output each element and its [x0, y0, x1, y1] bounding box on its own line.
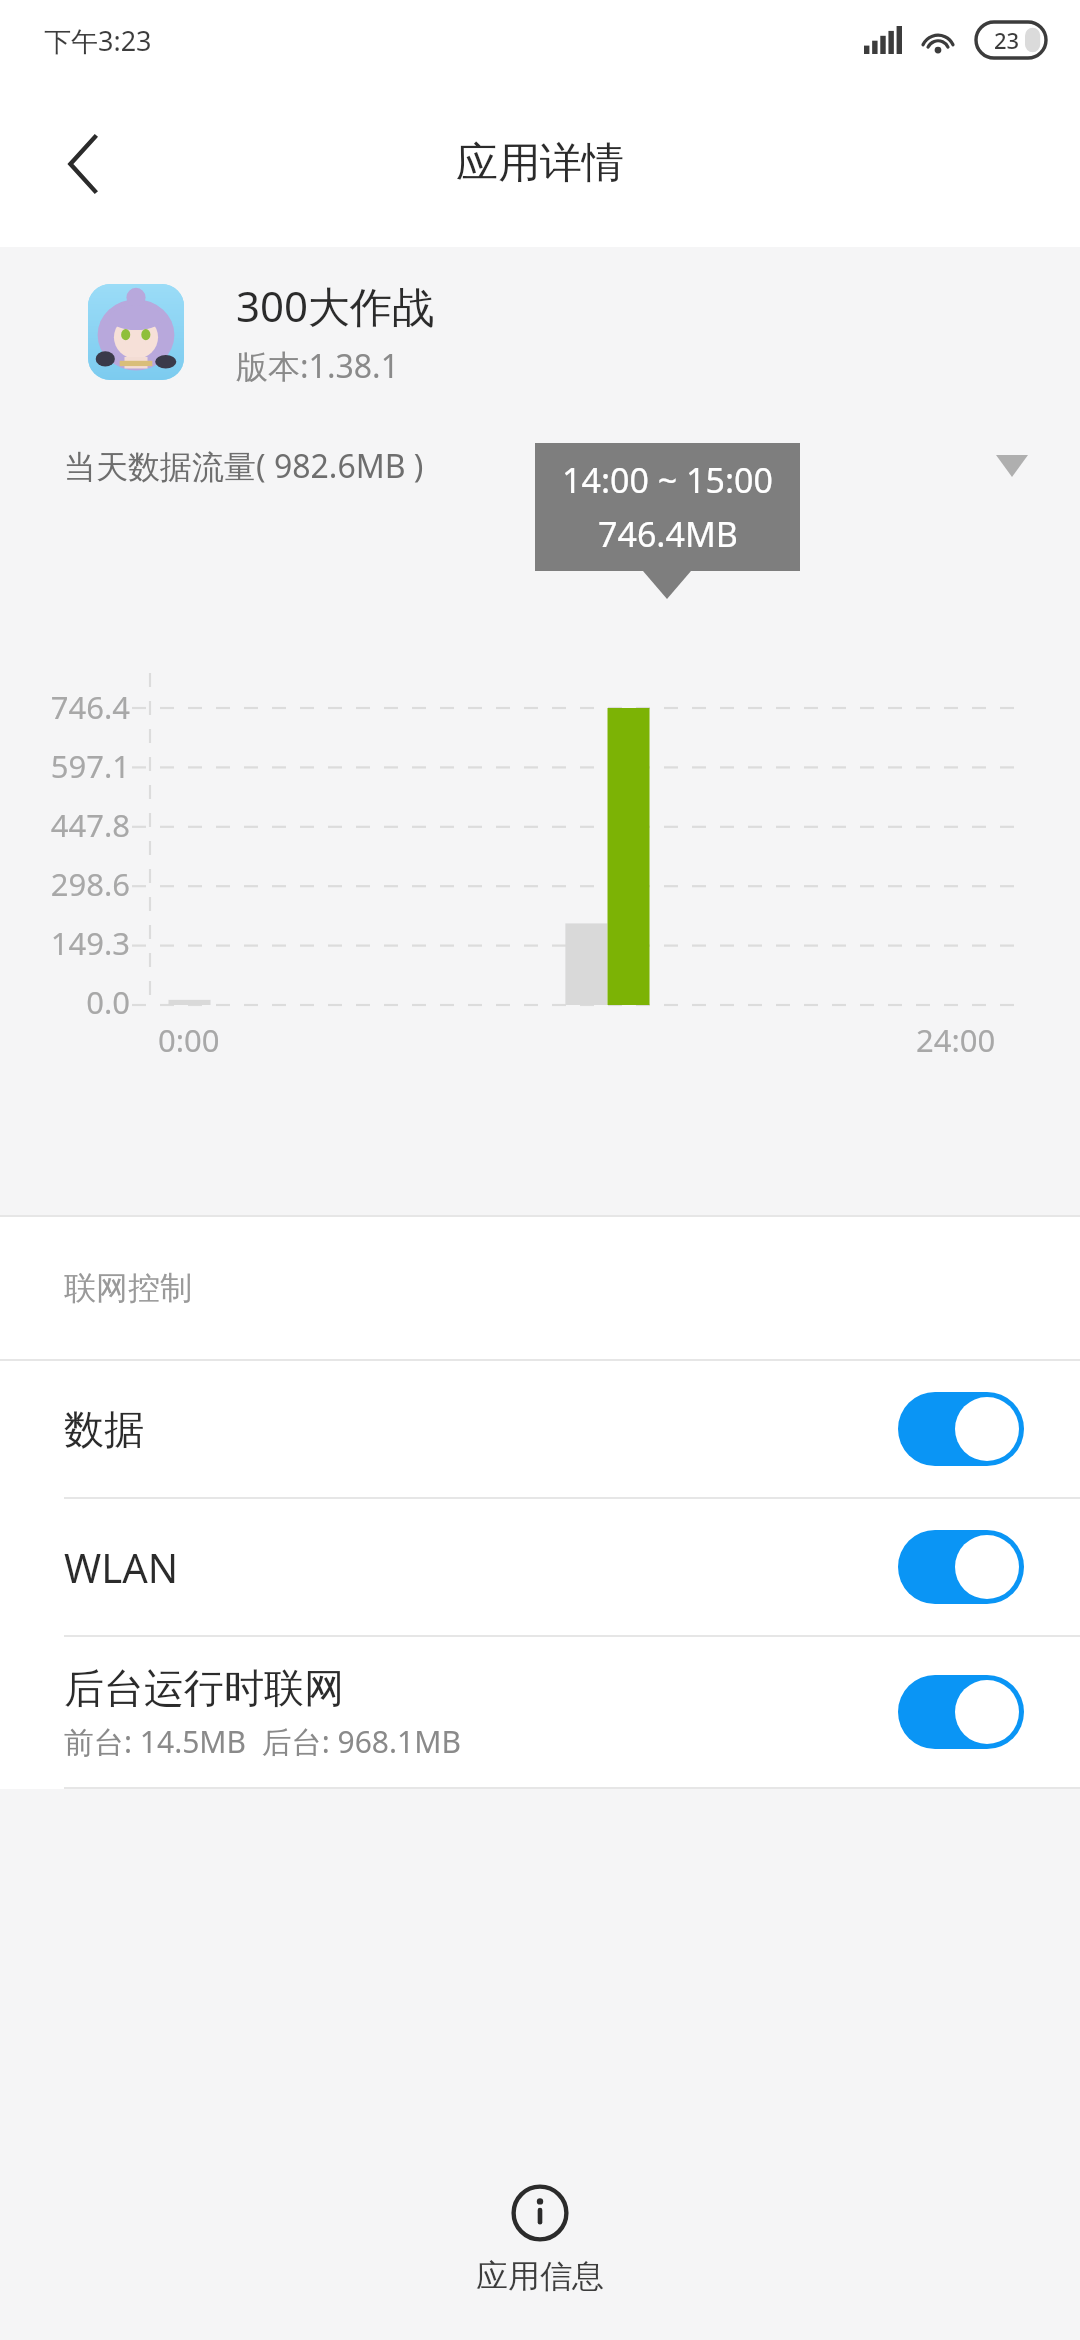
button[interactable]: WLAN	[0, 1499, 1080, 1635]
staticText: 447.8	[50, 804, 130, 846]
button[interactable]: 应用信息	[436, 2178, 644, 2302]
staticText: 当天数据流量( 982.6MB )	[64, 444, 424, 488]
staticText: 后台运行时联网	[64, 1663, 344, 1713]
button[interactable]: Back	[36, 116, 132, 212]
button[interactable]: Toggle on	[898, 1392, 1024, 1466]
button[interactable]: 当天数据流量( 982.6MB )	[0, 417, 1080, 515]
staticText: 版本:1.38.1	[236, 344, 399, 388]
button[interactable]: 300大作战	[0, 247, 1080, 417]
button[interactable]: 数据	[0, 1361, 1080, 1497]
staticText: 23	[994, 25, 1020, 55]
staticText: 0:00	[158, 1019, 220, 1061]
staticText: 0.0	[86, 981, 130, 1023]
staticText: 14:00 ~ 15:00	[562, 457, 773, 503]
button[interactable]: Toggle on	[898, 1530, 1024, 1604]
staticText: 746.4	[50, 686, 130, 728]
staticText: 597.1	[50, 745, 130, 787]
staticText: 数据	[64, 1404, 144, 1454]
staticText: 300大作战	[236, 277, 435, 334]
staticText: 298.6	[50, 863, 130, 905]
staticText: 应用详情	[456, 137, 624, 190]
staticText: 24:00	[916, 1019, 996, 1061]
button[interactable]: Toggle on	[898, 1675, 1024, 1749]
staticText: 应用信息	[476, 2256, 604, 2296]
staticText: 联网控制	[64, 1268, 192, 1308]
staticText: WLAN	[64, 1540, 179, 1594]
staticText: 746.4MB	[598, 511, 738, 557]
staticText: 前台: 14.5MB 后台: 968.1MB	[64, 1721, 461, 1762]
button[interactable]: 后台运行时联网	[0, 1637, 1080, 1787]
staticText: 下午3:23	[44, 22, 152, 59]
staticText: 149.3	[50, 922, 130, 964]
